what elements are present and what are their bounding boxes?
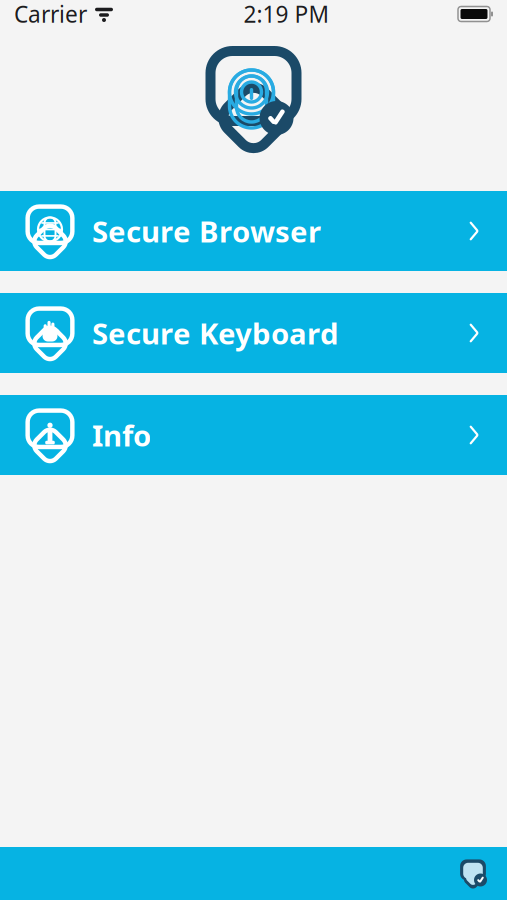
staticText: Secure Keyboard [92, 313, 339, 352]
staticText: Info [92, 415, 151, 454]
button[interactable]: Secure Keyboard [0, 293, 507, 373]
button[interactable]: Secure Browser [0, 191, 507, 271]
staticText: 2:19 PM [243, 0, 329, 29]
button[interactable]: Info [0, 395, 507, 475]
staticText: Carrier [14, 0, 87, 29]
staticText: Secure Browser [92, 211, 321, 250]
